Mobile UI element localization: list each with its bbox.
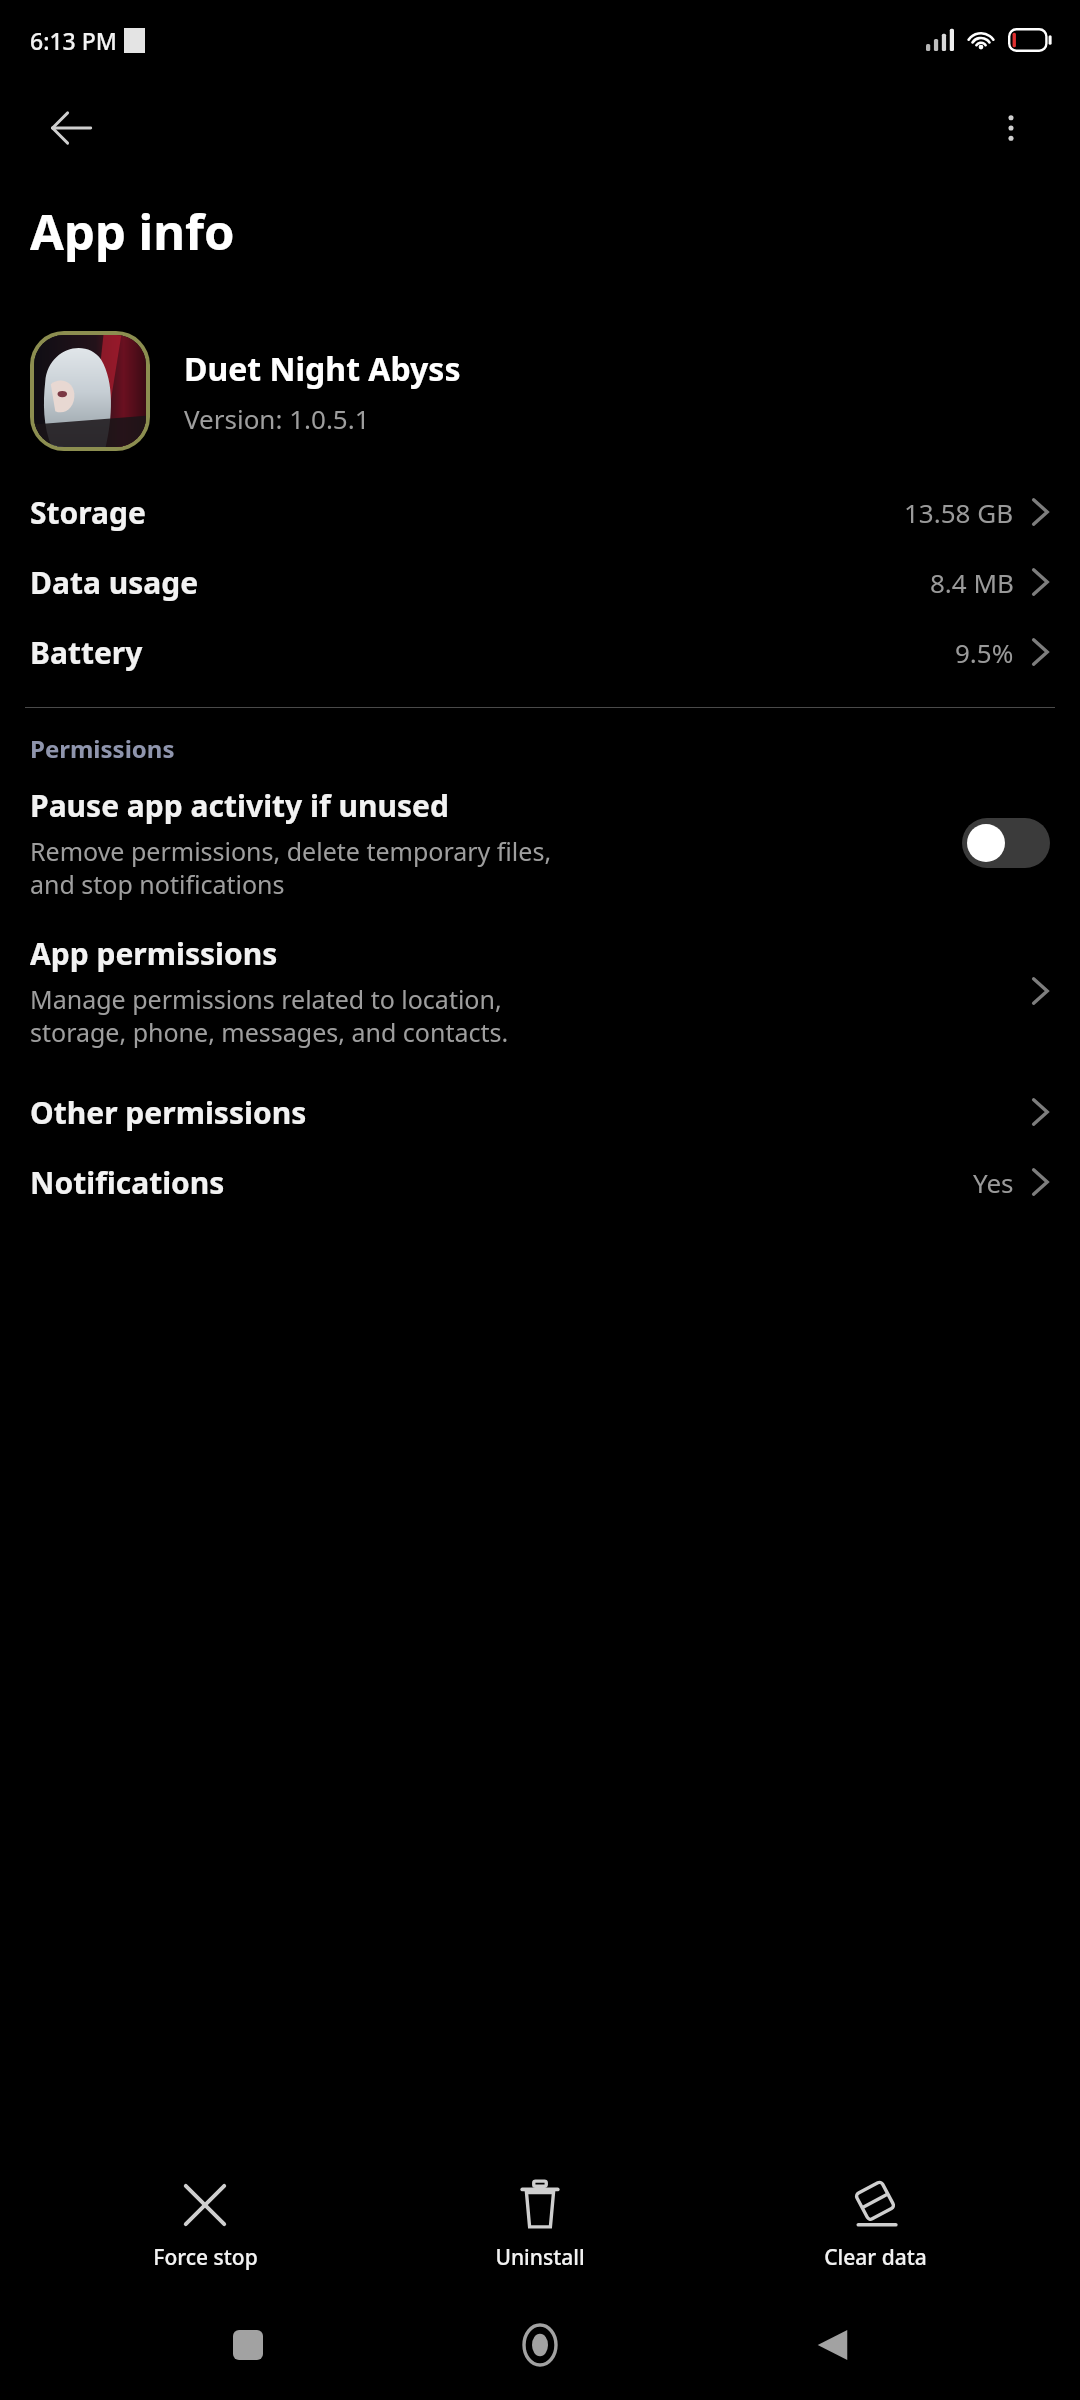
staticText: 6:13 PM	[30, 25, 117, 56]
staticText: Battery	[30, 632, 955, 673]
staticText: Remove permissions, delete temporary fil…	[30, 834, 552, 901]
button[interactable]: Back	[40, 97, 102, 159]
staticText: App permissions	[30, 933, 278, 974]
button[interactable]: Other permissions	[0, 1077, 1080, 1147]
button[interactable]: Recents	[203, 2300, 293, 2390]
staticText: Version: 1.0.5.1	[184, 401, 370, 436]
button[interactable]: Home	[495, 2300, 585, 2390]
staticText: 13.58 GB	[904, 495, 1014, 530]
staticText: App info	[30, 198, 235, 265]
button[interactable]: Storage	[0, 477, 1080, 547]
staticText: Clear data	[824, 2243, 927, 2272]
staticText: Uninstall	[495, 2243, 585, 2272]
staticText: 9.5%	[955, 635, 1014, 670]
button[interactable]: Pause app activity if unused toggle	[962, 818, 1050, 868]
button[interactable]: App permissions	[0, 927, 1080, 1055]
button[interactable]: More options	[980, 97, 1042, 159]
staticText: Data usage	[30, 562, 930, 603]
staticText: Manage permissions related to location, …	[30, 982, 509, 1049]
button[interactable]: Pause app activity if unused	[0, 779, 1080, 907]
staticText: Other permissions	[30, 1092, 1030, 1133]
button[interactable]: Clear data	[745, 2173, 1005, 2278]
staticText: Force stop	[153, 2243, 258, 2272]
staticText: Storage	[30, 492, 904, 533]
staticText: Notifications	[30, 1162, 973, 1203]
button[interactable]: Uninstall	[410, 2173, 670, 2278]
staticText: Yes	[973, 1165, 1014, 1200]
button[interactable]: Battery	[0, 617, 1080, 687]
button[interactable]: Back	[788, 2300, 878, 2390]
staticText: Duet Night Abyss	[184, 347, 461, 391]
button[interactable]: Notifications	[0, 1147, 1080, 1217]
staticText: Pause app activity if unused	[30, 785, 449, 826]
staticText: 8.4 MB	[930, 565, 1014, 600]
button[interactable]: Data usage	[0, 547, 1080, 617]
staticText: Permissions	[30, 732, 175, 765]
button[interactable]: Force stop	[75, 2173, 335, 2278]
